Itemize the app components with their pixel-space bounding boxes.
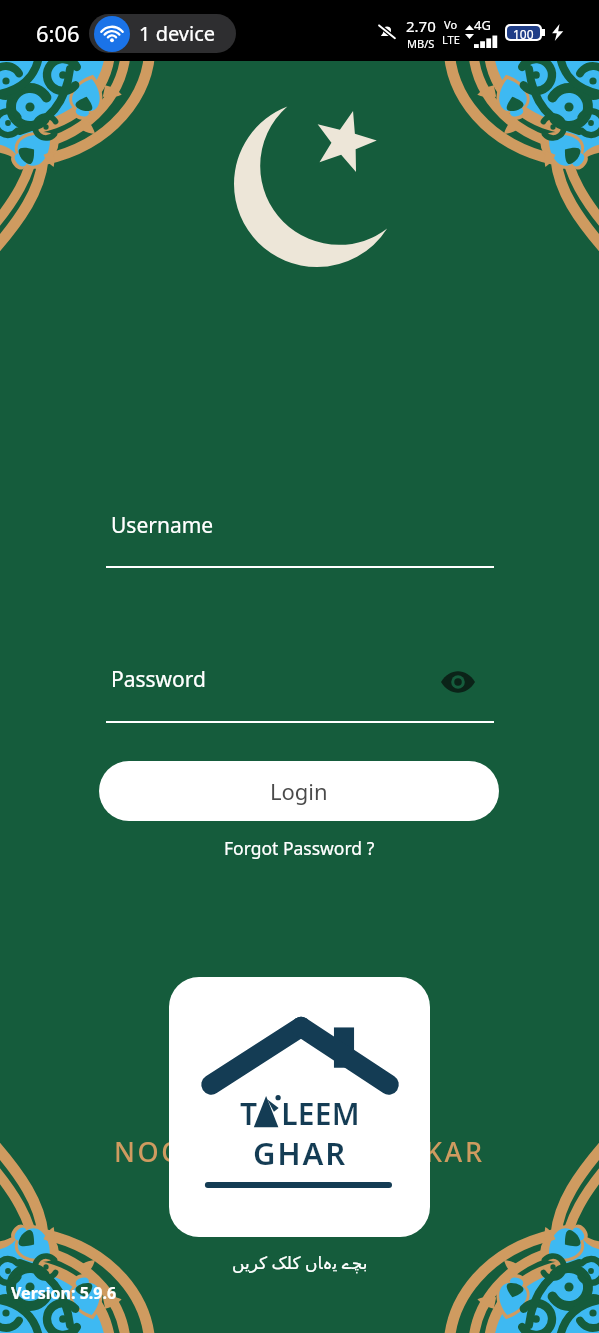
staticText: Password <box>111 665 206 694</box>
staticText: T LEEM <box>240 1093 360 1134</box>
staticText: 4G <box>474 16 491 34</box>
staticText: NOOR KA SAFAR SARKAR <box>114 1133 485 1170</box>
button[interactable]: 1 device <box>89 14 236 53</box>
staticText: 100 <box>513 26 534 39</box>
staticText: Vo <box>444 17 458 32</box>
button[interactable]: بچے یہاں کلک کریں <box>222 1246 378 1279</box>
button[interactable]: Show password <box>437 661 479 703</box>
staticText: LTE <box>442 32 460 47</box>
button[interactable]: Login <box>99 761 499 821</box>
staticText: Version: 5.9.6 <box>11 1282 117 1304</box>
button[interactable]: Forgot Password ? <box>214 830 385 866</box>
staticText: Username <box>111 511 214 540</box>
button[interactable]: Password <box>106 654 494 724</box>
button[interactable]: Username <box>106 500 494 570</box>
staticText: 2.70 <box>406 16 436 36</box>
staticText: Forgot Password ? <box>224 836 375 860</box>
button[interactable]: Taleem Ghar <box>169 977 430 1237</box>
staticText: 6:06 <box>36 18 80 48</box>
staticText: 1 device <box>139 20 216 47</box>
staticText: بچے یہاں کلک کریں <box>232 1251 368 1274</box>
staticText: MB/S <box>407 36 435 48</box>
staticText: GHAR <box>253 1132 347 1174</box>
staticText: Login <box>270 776 328 806</box>
